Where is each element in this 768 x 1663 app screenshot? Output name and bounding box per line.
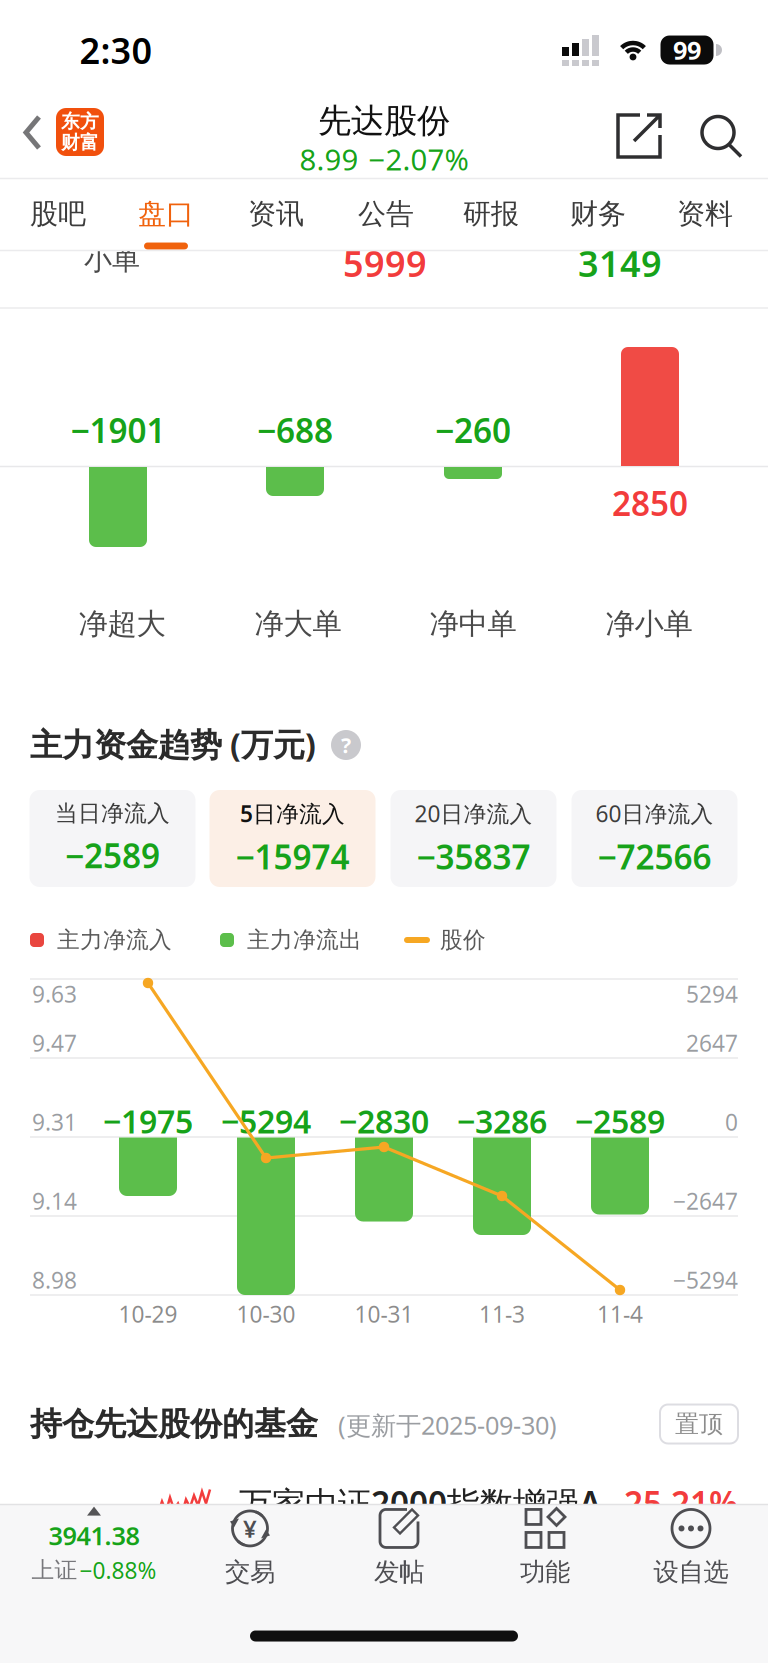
staticText: 5294 xyxy=(686,979,738,1009)
staticText: 9.47 xyxy=(32,1028,77,1058)
staticText: 主力净流入 xyxy=(57,926,172,954)
staticText: −5294 xyxy=(673,1265,738,1295)
staticText: 东方 xyxy=(61,110,99,133)
staticText: 研报 xyxy=(463,197,519,231)
staticText: 当日净流入 xyxy=(55,799,170,827)
staticText: −2.07% xyxy=(368,139,468,178)
staticText: 万家中证2000指数增强A xyxy=(239,1481,601,1525)
staticText: 持仓先达股份的基金 xyxy=(30,1404,318,1444)
staticText: 资料 xyxy=(677,197,733,231)
staticText: 功能 xyxy=(520,1556,570,1587)
button[interactable]: Back xyxy=(23,114,43,152)
staticText: ? xyxy=(341,731,351,759)
staticText: 11-4 xyxy=(597,1299,643,1329)
staticText: 9.63 xyxy=(32,979,77,1009)
button[interactable]: 功能 xyxy=(480,1495,610,1599)
staticText: 设自选 xyxy=(653,1556,728,1587)
button[interactable]: 上证指数 xyxy=(9,1496,179,1596)
staticText: 8.98 xyxy=(32,1265,77,1295)
staticText: −1975 xyxy=(103,1100,193,1142)
staticText: 净大单 xyxy=(254,606,341,642)
staticText: 3941.38 xyxy=(48,1519,139,1552)
staticText: 净小单 xyxy=(605,606,692,642)
staticText: ¥ xyxy=(243,1512,257,1544)
staticText: 5999 xyxy=(343,239,427,287)
staticText: 股价 xyxy=(440,926,486,954)
staticText: −0.88% xyxy=(79,1555,156,1585)
button[interactable]: Search xyxy=(699,113,743,158)
staticText: 财务 xyxy=(570,197,626,231)
staticText: −2589 xyxy=(65,833,160,878)
button[interactable]: 5日净流入 xyxy=(209,790,375,887)
staticText: 5日净流入 xyxy=(240,798,345,828)
button[interactable]: 东方财富 xyxy=(56,108,104,156)
staticText: 10-31 xyxy=(354,1299,413,1329)
staticText: 8.99 xyxy=(299,139,358,178)
staticText: 3149 xyxy=(578,239,662,287)
staticText: 99 xyxy=(673,33,701,67)
staticText: 2:30 xyxy=(79,26,152,74)
staticText: 9.31 xyxy=(32,1107,77,1137)
button[interactable]: 公告 xyxy=(338,183,434,245)
staticText: 盘口 xyxy=(138,197,194,231)
button[interactable]: 盘口 xyxy=(118,183,214,245)
button[interactable]: 当日净流入 xyxy=(29,790,195,887)
staticText: 财富 xyxy=(61,131,99,154)
staticText: 10-30 xyxy=(236,1299,295,1329)
staticText: −260 xyxy=(435,408,511,452)
staticText: 25.21% xyxy=(624,1481,738,1525)
staticText: 发帖 xyxy=(374,1556,424,1587)
button[interactable]: 资讯 xyxy=(228,183,324,245)
staticText: −688 xyxy=(257,408,333,452)
button[interactable]: 研报 xyxy=(443,183,539,245)
staticText: −1901 xyxy=(70,408,165,452)
button[interactable]: ¥ xyxy=(185,1495,315,1599)
staticText: −2830 xyxy=(339,1100,429,1142)
staticText: 公告 xyxy=(358,197,414,231)
staticText: 股吧 xyxy=(30,197,86,231)
button[interactable]: 20日净流入 xyxy=(390,790,556,887)
staticText: −3286 xyxy=(457,1100,547,1142)
staticText: 主力净流出 xyxy=(247,926,362,954)
button[interactable]: Share xyxy=(616,113,662,159)
staticText: 2850 xyxy=(612,481,688,525)
staticText: 2647 xyxy=(686,1028,738,1058)
button[interactable]: 设自选 xyxy=(626,1495,756,1599)
button[interactable]: Help xyxy=(331,730,361,760)
button[interactable]: 60日净流入 xyxy=(571,790,737,887)
staticText: −2647 xyxy=(673,1186,738,1216)
button[interactable]: 置顶 xyxy=(660,1404,738,1443)
staticText: 11-3 xyxy=(479,1299,525,1329)
staticText: −15974 xyxy=(235,834,349,879)
staticText: 10-29 xyxy=(118,1299,177,1329)
staticText: 0 xyxy=(725,1107,738,1137)
staticText: 交易 xyxy=(225,1556,275,1587)
staticText: 小单 xyxy=(84,243,140,277)
staticText: 净中单 xyxy=(429,606,516,642)
button[interactable]: 资料 xyxy=(657,183,753,245)
staticText: −35837 xyxy=(416,834,530,879)
button[interactable]: 万家中证2000指数增强A xyxy=(30,1474,738,1532)
button[interactable]: 股吧 xyxy=(10,183,106,245)
staticText: (更新于2025-09-30) xyxy=(338,1408,557,1442)
staticText: 资讯 xyxy=(248,197,304,231)
button[interactable]: 财务 xyxy=(550,183,646,245)
staticText: −2589 xyxy=(575,1100,665,1142)
staticText: 先达股份 xyxy=(318,100,450,141)
staticText: 20日净流入 xyxy=(414,798,532,828)
button[interactable]: 发帖 xyxy=(334,1495,464,1599)
staticText: 净超大 xyxy=(78,606,165,642)
staticText: −5294 xyxy=(221,1100,311,1142)
staticText: 置顶 xyxy=(675,1409,723,1439)
staticText: 上证 xyxy=(31,1556,77,1584)
staticText: −72566 xyxy=(597,834,711,879)
staticText: 9.14 xyxy=(32,1186,77,1216)
staticText: 60日净流入 xyxy=(595,798,713,828)
staticText: 主力资金趋势 (万元) xyxy=(30,723,316,765)
